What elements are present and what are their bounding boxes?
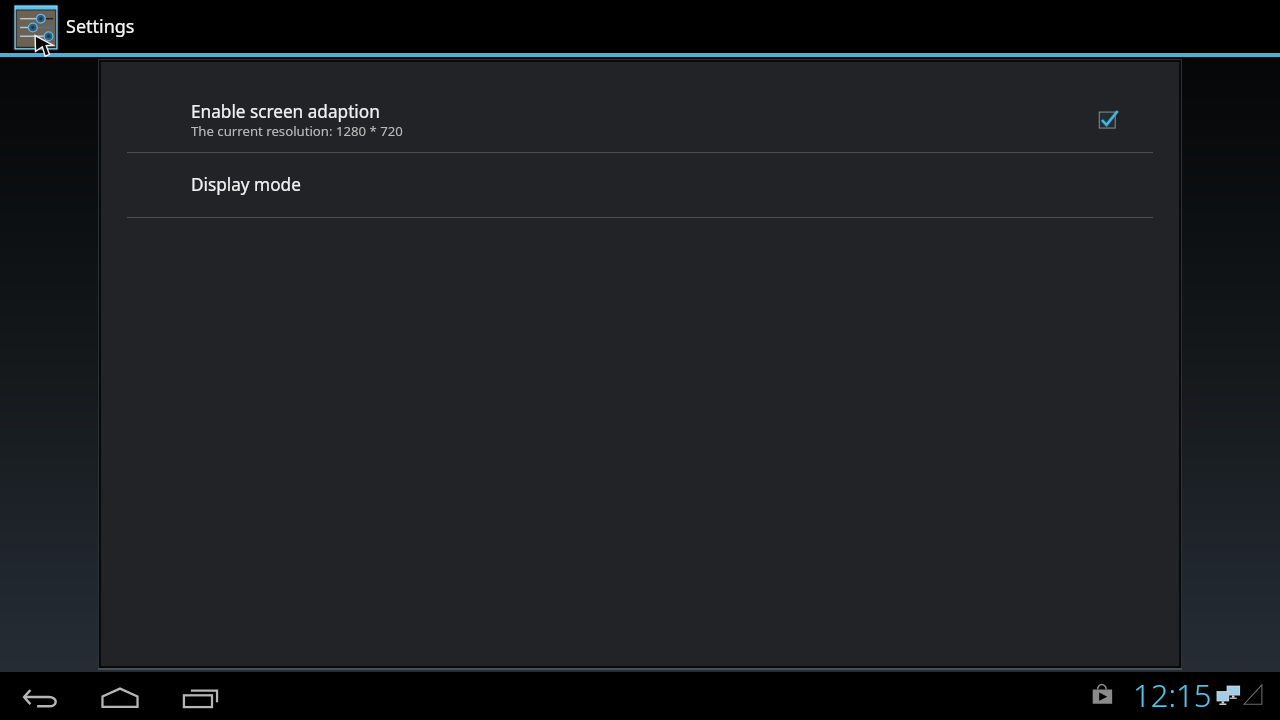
button[interactable]: Home xyxy=(96,673,144,720)
button[interactable]: Display mode xyxy=(101,153,1179,217)
button[interactable]: Settings xyxy=(13,0,151,53)
other: Signal xyxy=(1243,684,1264,706)
button[interactable]: Recents xyxy=(176,673,224,720)
other: Play Store xyxy=(1090,682,1117,707)
other: Ethernet xyxy=(1216,685,1244,706)
staticText: Display mode xyxy=(191,173,301,196)
staticText: Settings xyxy=(66,14,135,39)
other: Settings xyxy=(13,4,59,50)
button[interactable]: Back xyxy=(16,673,64,720)
staticText: The current resolution: 1280 * 720 xyxy=(191,122,403,140)
staticText: 12:15 xyxy=(1133,674,1212,716)
button[interactable]: Enable screen adaption xyxy=(101,87,1179,152)
staticText: Enable screen adaption xyxy=(191,100,380,123)
